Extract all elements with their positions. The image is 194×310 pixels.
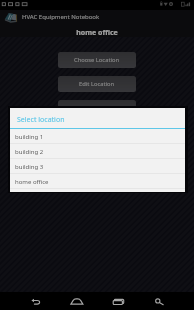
staticText: HVAC Equipment Notebook — [22, 13, 100, 21]
staticText: Select location — [17, 115, 65, 125]
button[interactable]: building 1 — [10, 129, 185, 144]
staticText: home office — [15, 178, 49, 186]
staticText: Add Equipment — [76, 104, 119, 112]
staticText: building 2 — [15, 148, 44, 156]
staticText: Choose Location — [74, 56, 120, 64]
button[interactable]: Back — [0, 292, 49, 310]
button[interactable]: building 2 — [10, 144, 185, 159]
button[interactable]: Search — [147, 292, 194, 310]
button[interactable]: home office — [10, 174, 185, 189]
button[interactable]: Edit Location — [58, 76, 136, 92]
staticText: building 1 — [15, 133, 44, 141]
staticText: building 3 — [15, 163, 44, 171]
button[interactable]: building 3 — [10, 159, 185, 174]
button[interactable]: Choose Location — [58, 52, 136, 68]
staticText: Edit Location — [79, 80, 115, 88]
button[interactable]: Add Equipment — [58, 100, 136, 116]
button[interactable]: Home — [49, 292, 98, 310]
staticText: home office — [0, 28, 194, 38]
button[interactable]: Recent apps — [98, 292, 147, 310]
